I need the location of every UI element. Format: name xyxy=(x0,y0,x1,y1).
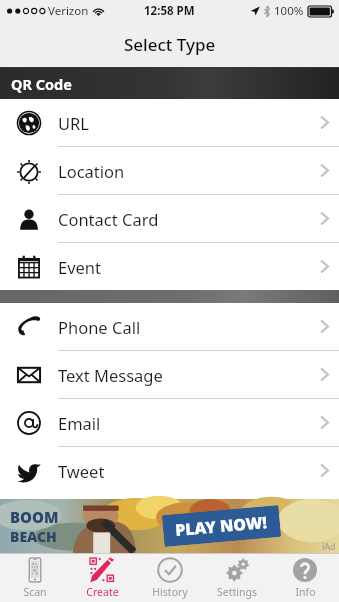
button[interactable]: Tweet xyxy=(0,447,339,494)
staticText: Info xyxy=(295,585,316,599)
staticText: Settings xyxy=(217,585,257,599)
button[interactable]: History xyxy=(137,557,203,599)
button[interactable]: Text Message xyxy=(0,351,339,398)
button[interactable]: Scan xyxy=(2,557,68,599)
staticText: Phone Call xyxy=(58,316,309,338)
staticText: Contact Card xyxy=(58,208,309,230)
button[interactable]: Phone Call xyxy=(0,303,339,350)
button[interactable]: Contact Card xyxy=(0,195,339,242)
staticText: URL xyxy=(58,112,309,134)
staticText: PLAY NOW! xyxy=(174,511,269,541)
staticText: 100% xyxy=(274,3,304,19)
button[interactable]: Info xyxy=(272,557,338,599)
staticText: Scan xyxy=(23,585,47,599)
button[interactable]: Location xyxy=(0,147,339,194)
staticText: Event xyxy=(58,256,309,278)
staticText: Email xyxy=(58,412,309,434)
staticText: Verizon xyxy=(48,3,89,19)
button[interactable]: Create xyxy=(69,557,135,599)
button[interactable]: Advertisement: Boom Beach, Play Now xyxy=(0,499,339,553)
button[interactable]: Settings xyxy=(204,557,270,599)
staticText: BEACH xyxy=(10,527,57,546)
staticText: Create xyxy=(86,585,119,599)
staticText: BOOM xyxy=(10,507,59,527)
staticText: 12:58 PM xyxy=(144,3,195,19)
staticText: iAd xyxy=(322,540,336,552)
staticText: Select Type xyxy=(124,33,216,56)
staticText: History xyxy=(152,585,188,599)
button[interactable]: Email xyxy=(0,399,339,446)
button[interactable]: Event xyxy=(0,243,339,290)
button[interactable]: URL xyxy=(0,99,339,146)
staticText: Text Message xyxy=(58,364,309,386)
staticText: Tweet xyxy=(58,460,309,482)
staticText: QR Code xyxy=(11,74,72,94)
staticText: Location xyxy=(58,160,309,182)
